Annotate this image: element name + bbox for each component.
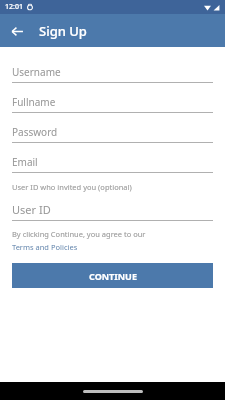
button[interactable]: Back [7, 21, 27, 41]
staticText: Fullname [12, 95, 56, 109]
button[interactable]: CONTINUE [12, 263, 213, 288]
staticText: Username [12, 65, 61, 79]
button[interactable]: Password [12, 121, 213, 143]
staticText: CONTINUE [89, 270, 137, 282]
staticText: User ID [12, 202, 51, 217]
staticText: Terms and Policies [12, 242, 78, 252]
staticText: Email [12, 155, 38, 169]
staticText: By clicking Continue, you agree to our [12, 229, 146, 239]
button[interactable]: Terms and Policies [12, 242, 78, 252]
button[interactable]: Email [12, 151, 213, 173]
button[interactable]: Username [12, 61, 213, 83]
staticText: Password [12, 125, 58, 139]
staticText: Sign Up [39, 22, 87, 40]
button[interactable]: Fullname [12, 91, 213, 113]
staticText: User ID who invited you (optional) [12, 182, 132, 192]
staticText: 12:01 [5, 2, 23, 12]
button[interactable]: User ID [12, 199, 213, 221]
